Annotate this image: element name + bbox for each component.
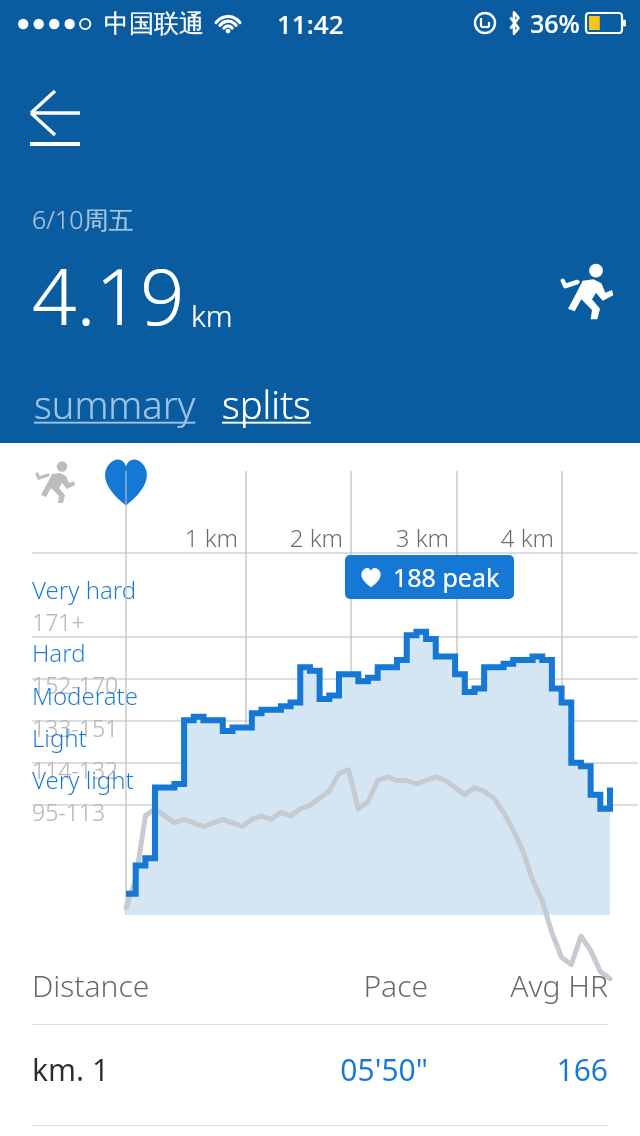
staticText: km. 1 — [32, 1049, 288, 1090]
staticText: 133-151 — [32, 712, 119, 743]
staticText: Avg HR — [428, 965, 608, 1006]
staticText: 95-113 — [32, 796, 106, 827]
staticText: 188 peak — [393, 560, 500, 594]
staticText: Light — [32, 721, 87, 754]
staticText: 36% — [530, 6, 580, 40]
button[interactable]: Back — [18, 82, 94, 158]
staticText: 3 km — [379, 521, 449, 554]
staticText: splits — [222, 378, 311, 430]
staticText: 中国联通 — [104, 8, 204, 39]
staticText: Very hard — [32, 573, 137, 606]
staticText: 6/10周五 — [32, 202, 134, 236]
staticText: 05'50" — [288, 1049, 428, 1090]
staticText: 2 km — [273, 521, 343, 554]
staticText: summary — [34, 378, 196, 430]
staticText: Hard — [32, 636, 86, 669]
staticText: 171+ — [32, 606, 85, 637]
button[interactable]: Pace chart — [32, 457, 80, 505]
staticText: 4.19 — [32, 242, 185, 348]
staticText: km — [191, 295, 233, 336]
staticText: Very light — [32, 763, 134, 796]
staticText: 4 km — [484, 521, 554, 554]
staticText: 166 — [428, 1049, 608, 1090]
button[interactable]: summary — [32, 378, 198, 430]
staticText: 152-170 — [32, 669, 119, 700]
staticText: 1 km — [168, 521, 238, 554]
staticText: Distance — [32, 965, 288, 1006]
button[interactable]: Activity type running — [556, 258, 620, 322]
button[interactable]: Heart rate chart — [100, 455, 152, 507]
button[interactable]: splits — [220, 378, 313, 430]
button[interactable]: 188 peak — [345, 555, 514, 599]
staticText: Pace — [288, 965, 428, 1006]
staticText: Moderate — [32, 679, 138, 712]
staticText: 11:42 — [277, 6, 344, 41]
staticText: 114-132 — [32, 754, 119, 785]
button[interactable]: km. 1 — [0, 1025, 640, 1113]
